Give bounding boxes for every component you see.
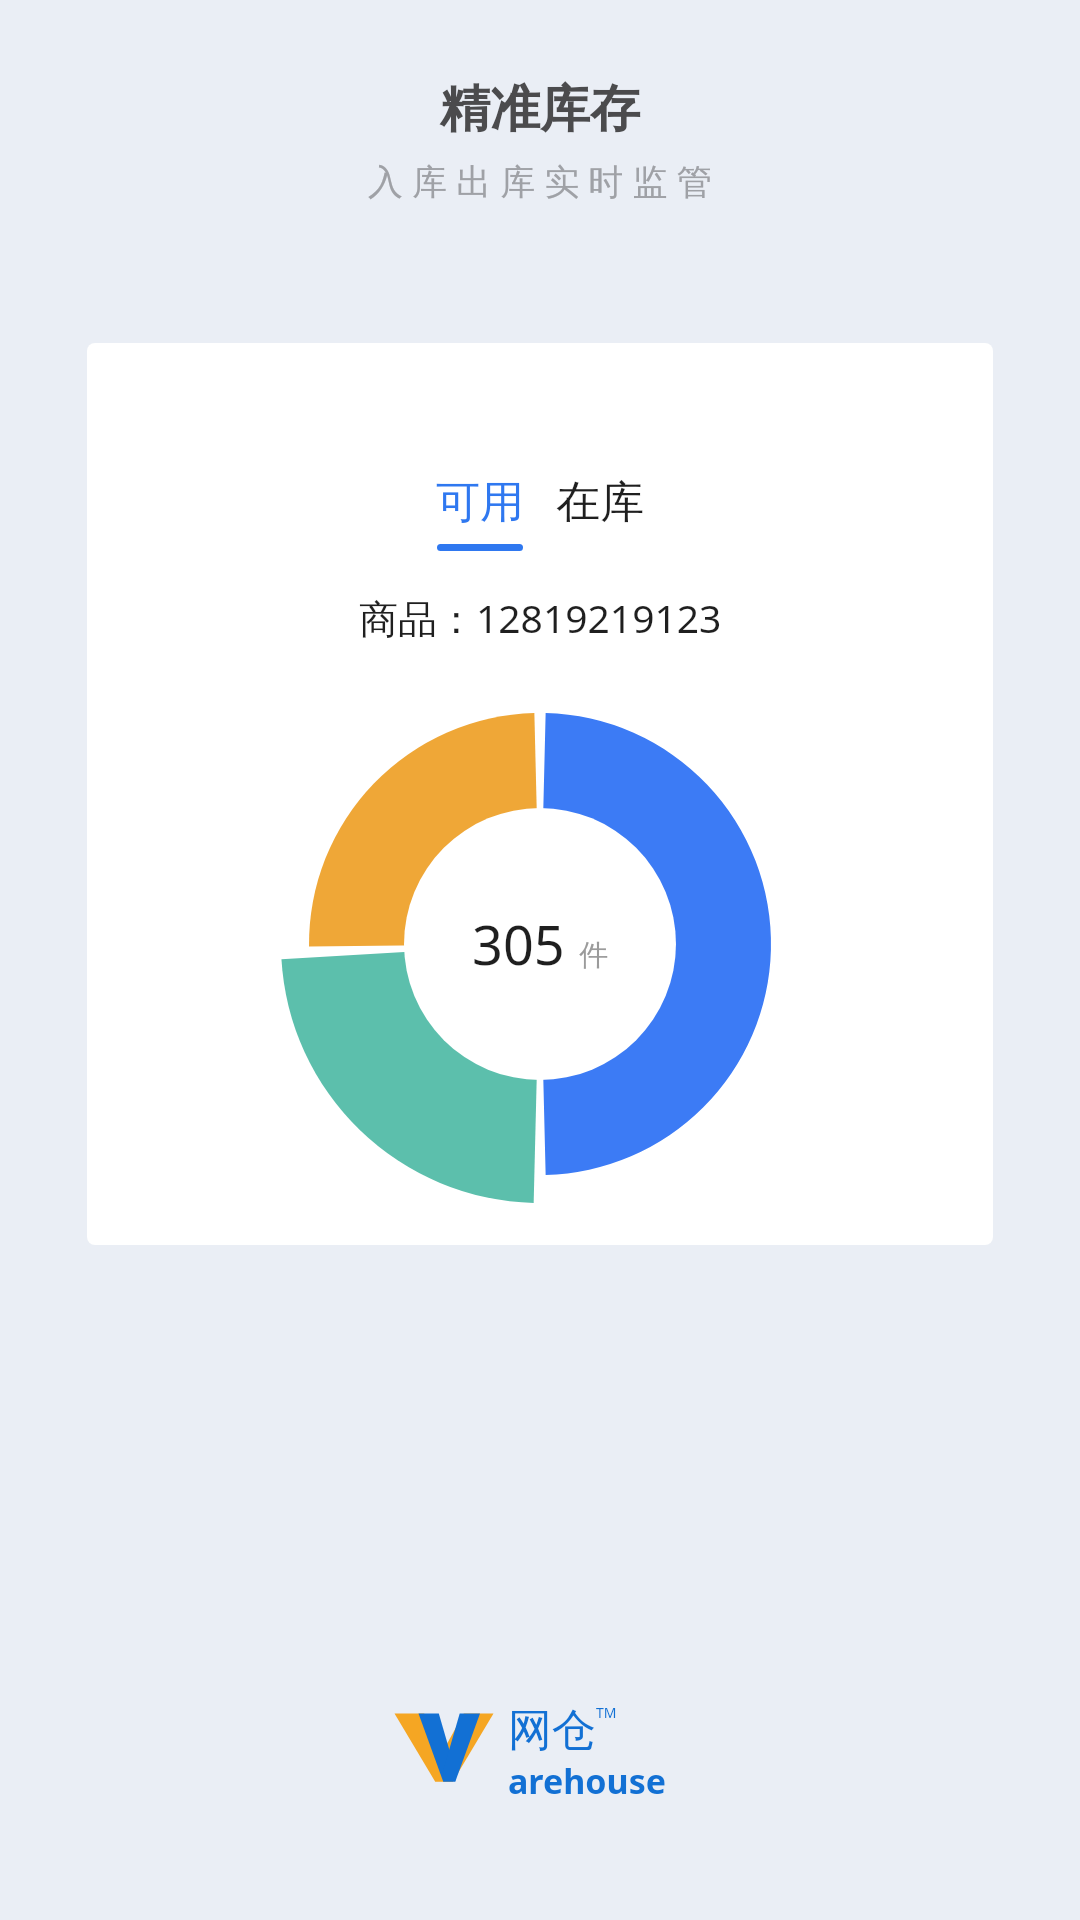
button[interactable]: 在库 [554, 475, 646, 551]
staticText: 网仓 [508, 1703, 596, 1758]
button[interactable]: 网仓 Warehouse logo [390, 1698, 690, 1808]
staticText: 入 库 出 库 实 时 监 管 [368, 157, 712, 205]
staticText: 305 [472, 907, 565, 981]
staticText: arehouse [508, 1758, 666, 1804]
staticText: 件 [579, 937, 608, 974]
staticText: TM [596, 1703, 617, 1722]
staticText: 在库 [556, 475, 644, 530]
staticText: 可用 [436, 475, 524, 530]
button[interactable]: 可用 [434, 475, 526, 551]
staticText: 精准库存 [440, 78, 640, 141]
staticText: 商品：12819219123 [359, 591, 722, 644]
